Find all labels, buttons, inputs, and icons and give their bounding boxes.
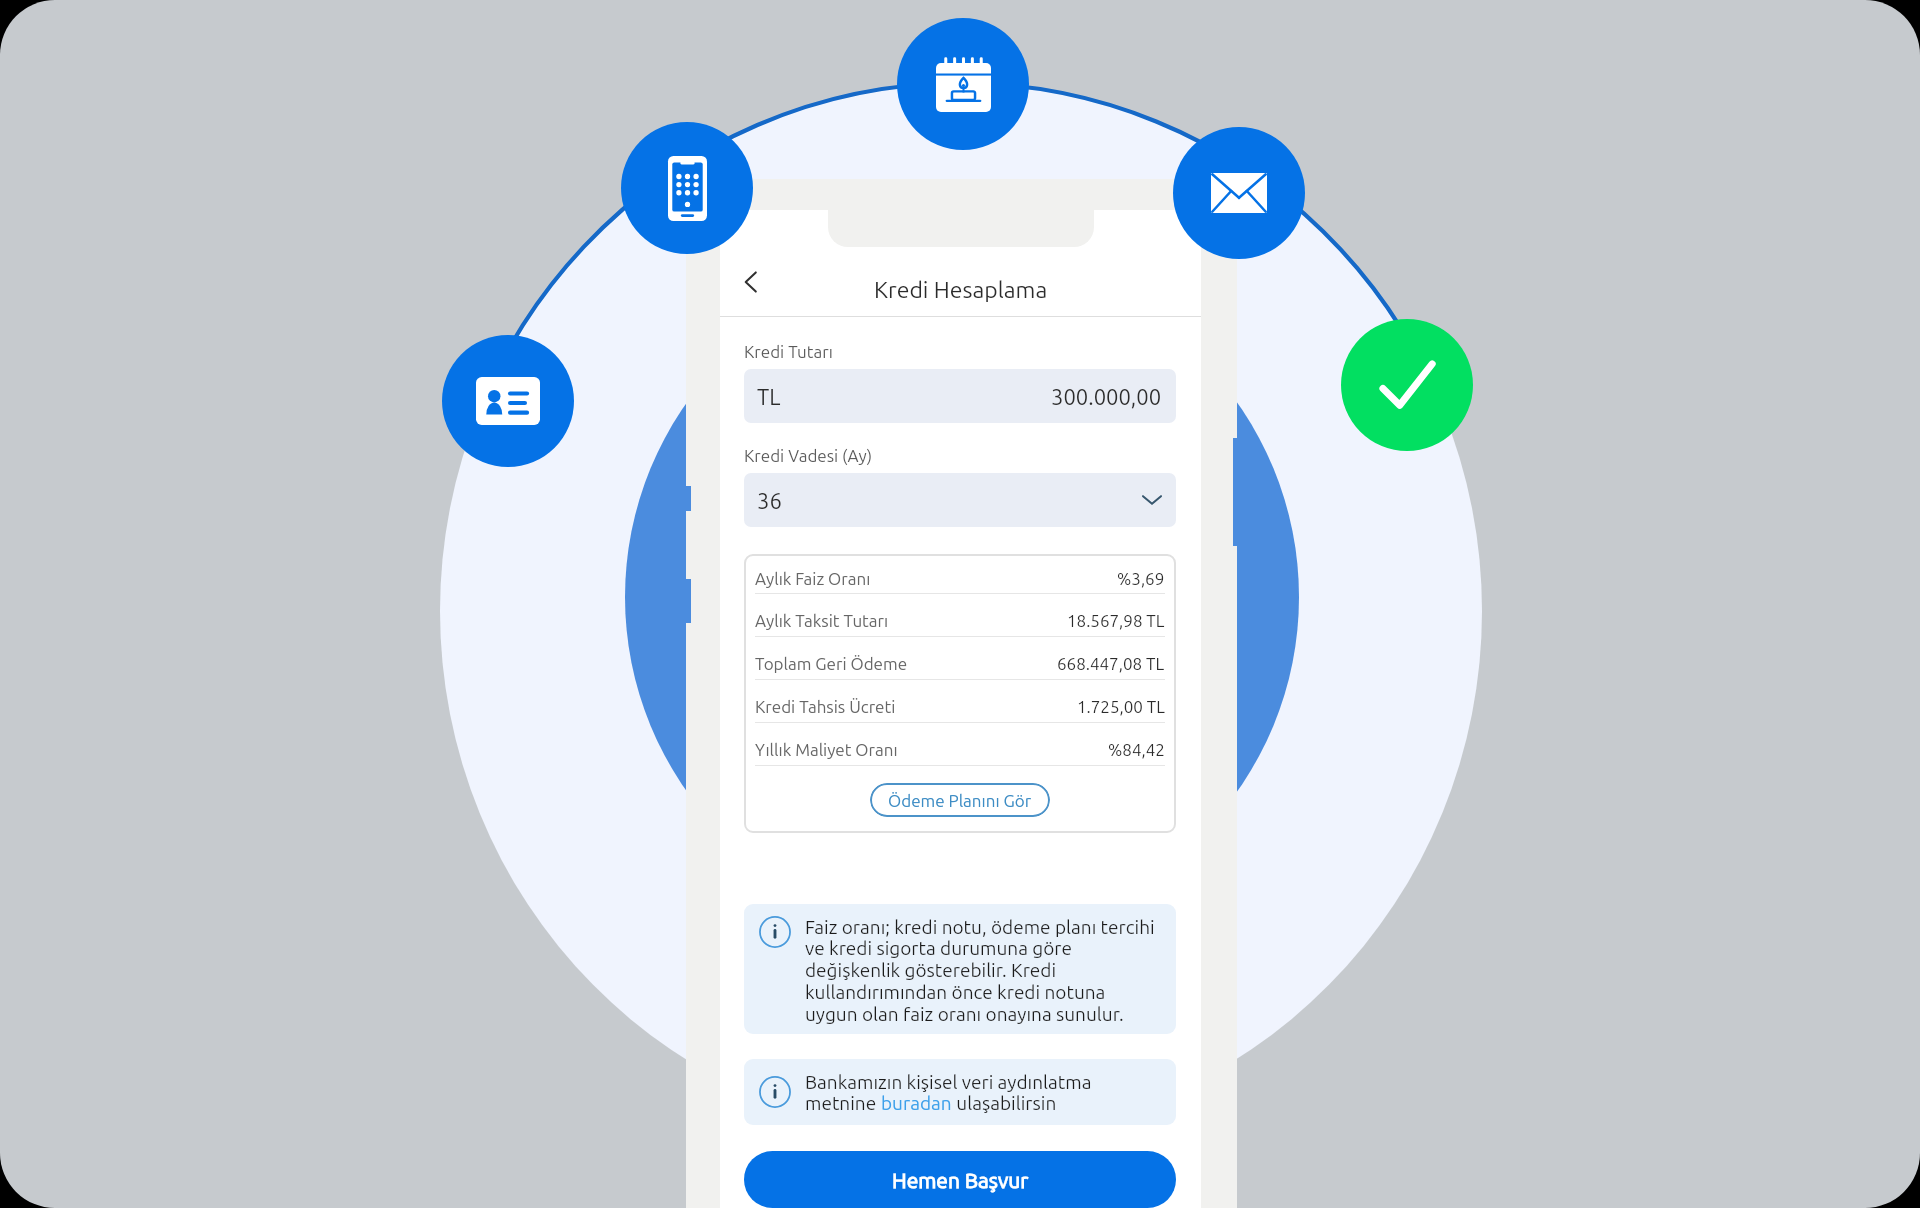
button[interactable]: Faiz oranı; kredi notu, ödeme planı terc… [744,904,1176,1034]
staticText: Hemen Başvur [892,1168,1029,1192]
staticText: TL [757,384,781,409]
button[interactable]: Calendar [897,18,1029,150]
staticText: Kredi Hesaplama [874,277,1048,303]
staticText: 1.725,00 TL [1077,697,1165,716]
button[interactable]: Aylık Taksit Tutarı [755,594,1165,636]
button[interactable]: Toplam Geri Ödeme [755,637,1165,679]
staticText: Kredi Vadesi (Ay) [744,446,872,465]
staticText: %84,42 [1108,740,1165,759]
button[interactable]: Yıllık Maliyet Oranı [755,723,1165,765]
staticText: Toplam Geri Ödeme [755,654,908,673]
button[interactable]: Approved [1341,319,1473,451]
staticText: Faiz oranı; kredi notu, ödeme planı terc… [805,916,1155,1024]
staticText: Yıllık Maliyet Oranı [755,740,898,759]
staticText: 668.447,08 TL [1057,654,1165,673]
staticText: 36 [757,488,782,513]
button[interactable]: Email [1173,127,1305,259]
button[interactable]: Ödeme Planını Gör [870,783,1050,817]
staticText: Ödeme Planını Gör [888,791,1032,810]
staticText: Aylık Faiz Oranı [755,569,871,588]
button[interactable]: 36 [744,473,1176,527]
button[interactable]: Identity card [442,335,574,467]
button[interactable]: TL [744,369,1176,423]
staticText: buradan [881,1092,952,1113]
button[interactable]: Back [730,261,772,303]
button[interactable]: Aylık Faiz Oranı [755,554,1165,593]
staticText: Kredi Tutarı [744,342,833,361]
staticText: ulaşabilirsin [952,1092,1057,1113]
button[interactable]: Kredi Tahsis Ücreti [755,680,1165,722]
button[interactable]: Bankamızın kişisel veri aydınlatma [744,1059,1176,1125]
staticText: %3,69 [1117,569,1165,588]
staticText: 18.567,98 TL [1067,611,1165,630]
staticText: Bankamızın kişisel veri aydınlatma [805,1071,1092,1092]
staticText: Aylık Taksit Tutarı [755,611,889,630]
staticText: 300.000,00 [1051,384,1162,409]
staticText: Kredi Tahsis Ücreti [755,697,896,716]
staticText: metnine [805,1092,881,1113]
button[interactable]: Mobile phone [621,122,753,254]
button[interactable]: Hemen Başvur [744,1151,1176,1208]
